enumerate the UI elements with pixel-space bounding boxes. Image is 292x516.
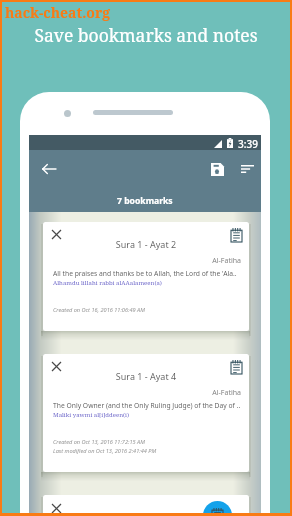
staticText: Maliki yawmi al[i]ddeen(i) [53,411,130,419]
staticText: 7 bookmarks [117,195,173,207]
button[interactable]: New bookmark [203,501,232,516]
staticText: Save bookmarks and notes [0,23,292,47]
staticText: 3:39 [238,137,258,151]
staticText: Created on Oct 16, 2016 11:06:49 AM [53,306,145,314]
staticText: Alhamdu lillahi rabbi alAAalameen(a) [53,279,162,287]
staticText: All the praises and thanks be to Allah, … [53,269,237,278]
staticText: Al-Fatiha [43,256,241,266]
staticText: Sura 1 - Ayat 4 [43,370,249,382]
staticText: Created on Oct 13, 2016 11:72:15 AM [53,438,145,446]
staticText: Al-Fatiha [43,388,241,398]
button[interactable] [43,495,249,516]
staticText: Sura 1 - Ayat 2 [43,238,249,250]
button[interactable]: Sort [232,154,262,184]
button[interactable]: Back [30,150,67,187]
staticText: Last modified on Oct 13, 2016 2:41:44 PM [53,447,157,455]
button[interactable]: Sura 1 - Ayat 2 [43,222,249,331]
staticText: hack-cheat.org [5,3,111,22]
button[interactable]: Sura 1 - Ayat 4 [43,354,249,472]
button[interactable]: Save [202,154,232,184]
staticText: The Only Owner (and the Only Ruling Judg… [53,401,241,410]
